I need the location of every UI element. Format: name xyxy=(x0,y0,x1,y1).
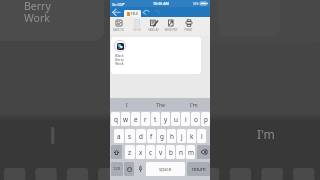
button[interactable]: BlackBerry Work xyxy=(113,40,126,66)
button[interactable]: z xyxy=(125,145,135,159)
button[interactable]: v xyxy=(156,145,165,159)
button[interactable]: Redo xyxy=(153,7,161,17)
button[interactable]: space xyxy=(146,162,185,176)
staticText: y xyxy=(164,115,168,124)
staticText: w xyxy=(123,115,129,124)
button[interactable]: k xyxy=(187,129,196,143)
staticText: I'm xyxy=(257,126,275,142)
button[interactable]: u xyxy=(171,112,180,126)
staticText: j xyxy=(181,132,183,141)
staticText: s xyxy=(128,132,132,141)
staticText: x xyxy=(139,148,143,157)
staticText: c xyxy=(149,148,153,157)
staticText: FILE xyxy=(131,11,139,16)
button[interactable]: c xyxy=(146,145,155,159)
button[interactable]: The xyxy=(144,98,177,111)
button[interactable]: o xyxy=(191,112,200,126)
button[interactable]: PRINT xyxy=(180,17,197,35)
button[interactable]: r xyxy=(141,112,150,126)
button[interactable]: Back xyxy=(112,7,121,17)
button[interactable]: j xyxy=(177,129,186,143)
button[interactable]: l xyxy=(197,129,206,143)
button[interactable]: Shift xyxy=(111,145,122,159)
staticText: v xyxy=(159,148,163,157)
button[interactable]: OPEN xyxy=(128,17,145,35)
button[interactable]: x xyxy=(136,145,145,159)
button[interactable]: n xyxy=(176,145,185,159)
staticText: f xyxy=(150,132,153,141)
staticText: I'm xyxy=(190,101,198,108)
staticText: 94% xyxy=(193,2,199,6)
button[interactable]: SEND PDF xyxy=(162,17,179,35)
button[interactable]: a xyxy=(114,129,124,143)
button[interactable]: I'm xyxy=(177,98,210,111)
staticText: m xyxy=(188,148,194,157)
staticText: SAVE TO xyxy=(113,28,124,32)
staticText: space xyxy=(159,166,172,172)
button[interactable]: h xyxy=(167,129,176,143)
button[interactable]: Dictate xyxy=(137,162,143,176)
button[interactable]: Emoji xyxy=(124,162,134,176)
staticText: No SIM xyxy=(112,2,124,6)
button[interactable]: Undo xyxy=(142,7,150,17)
staticText: q xyxy=(114,115,118,124)
staticText: t xyxy=(154,115,157,124)
button[interactable]: y xyxy=(161,112,170,126)
staticText: h xyxy=(170,132,174,141)
button[interactable]: q xyxy=(111,112,120,126)
button[interactable]: g xyxy=(157,129,166,143)
staticText: OPEN xyxy=(133,28,141,32)
button[interactable]: b xyxy=(166,145,175,159)
staticText: d xyxy=(139,132,143,141)
staticText: a xyxy=(117,132,121,141)
button[interactable]: i xyxy=(181,112,190,126)
staticText: The xyxy=(156,101,166,108)
button[interactable]: f xyxy=(147,129,156,143)
staticText: l xyxy=(201,132,203,141)
staticText: PRINT xyxy=(184,28,193,32)
staticText: n xyxy=(179,148,183,157)
staticText: 123 xyxy=(113,166,121,172)
button[interactable]: 123 xyxy=(111,162,123,176)
staticText: 10:36 AM xyxy=(153,1,169,6)
button[interactable]: SAVE AS xyxy=(145,17,162,35)
button[interactable]: d xyxy=(136,129,146,143)
staticText: Black Berry Work xyxy=(115,53,124,66)
staticText: o xyxy=(194,115,198,124)
staticText: b xyxy=(169,148,173,157)
staticText: g xyxy=(160,132,164,141)
button[interactable]: m xyxy=(186,145,195,159)
staticText: z xyxy=(128,148,132,157)
staticText: Berry Work xyxy=(24,0,51,25)
button[interactable]: I xyxy=(110,98,144,111)
button[interactable]: Backspace xyxy=(197,145,210,159)
button[interactable]: SAVE TO xyxy=(110,17,127,35)
staticText: e xyxy=(134,115,138,124)
staticText: i xyxy=(185,115,187,124)
button[interactable]: return xyxy=(187,162,210,176)
button[interactable]: FILE xyxy=(124,10,141,17)
button[interactable]: e xyxy=(131,112,140,126)
staticText: SEND PDF xyxy=(164,28,178,32)
staticText: p xyxy=(204,115,208,124)
staticText: SAVE AS xyxy=(148,28,159,32)
button[interactable]: s xyxy=(125,129,135,143)
staticText: return xyxy=(192,166,206,172)
staticText: r xyxy=(144,115,147,124)
staticText: I xyxy=(126,101,128,108)
button[interactable]: t xyxy=(151,112,160,126)
staticText: u xyxy=(174,115,178,124)
button[interactable]: p xyxy=(201,112,210,126)
staticText: k xyxy=(190,132,194,141)
button[interactable]: w xyxy=(121,112,130,126)
